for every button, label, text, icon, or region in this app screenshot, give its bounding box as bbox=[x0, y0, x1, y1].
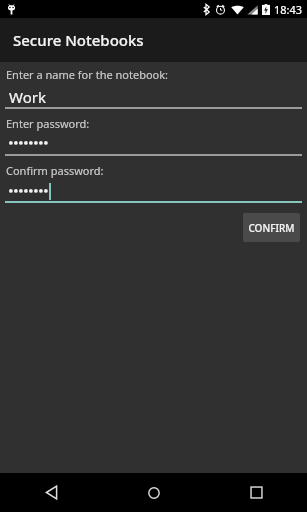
button[interactable] bbox=[5, 134, 302, 154]
button[interactable]: CONFIRM bbox=[243, 213, 300, 242]
button[interactable]: Recent apps bbox=[205, 473, 307, 512]
staticText: 18:43 bbox=[274, 2, 303, 17]
button[interactable]: Work bbox=[5, 86, 302, 107]
staticText: CONFIRM bbox=[248, 221, 295, 235]
button[interactable]: Home bbox=[103, 473, 205, 512]
staticText: Work bbox=[9, 87, 46, 107]
button[interactable]: Back bbox=[0, 473, 103, 512]
staticText: Secure Notebooks bbox=[13, 30, 144, 50]
staticText: Enter a name for the notebook: bbox=[6, 67, 169, 82]
staticText: Enter password: bbox=[6, 116, 90, 131]
button[interactable] bbox=[5, 181, 302, 201]
staticText: Confirm password: bbox=[6, 163, 104, 178]
